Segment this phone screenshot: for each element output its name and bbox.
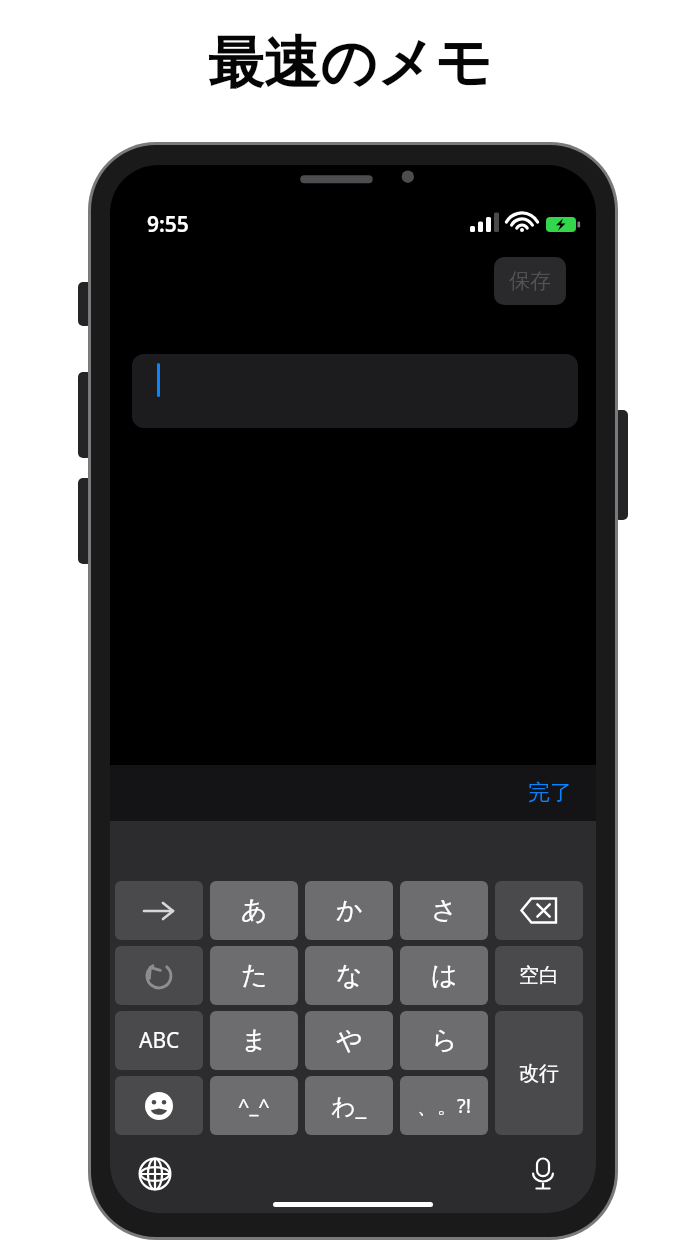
button[interactable]: Switch keyboard	[132, 1151, 178, 1197]
staticText: な	[336, 959, 363, 992]
staticText: 完了	[528, 779, 572, 807]
button[interactable]: は	[400, 946, 488, 1005]
staticText: や	[336, 1024, 363, 1057]
button[interactable]: Next candidate	[115, 881, 203, 940]
button[interactable]: ま	[210, 1011, 298, 1070]
button[interactable]: 改行	[495, 1011, 583, 1135]
button[interactable]	[132, 354, 578, 428]
staticText: 改行	[519, 1061, 559, 1086]
staticText: は	[431, 959, 458, 992]
button[interactable]: 完了	[510, 765, 590, 821]
button[interactable]: な	[305, 946, 393, 1005]
staticText: あ	[241, 894, 268, 927]
staticText: 、。?!	[417, 1092, 472, 1119]
button[interactable]: か	[305, 881, 393, 940]
button[interactable]: た	[210, 946, 298, 1005]
staticText: か	[336, 894, 363, 927]
staticText: た	[241, 959, 268, 992]
button[interactable]: 、。?!	[400, 1076, 488, 1135]
staticText: 最速のメモ	[208, 28, 492, 99]
button[interactable]: 保存	[494, 257, 566, 305]
staticText: ら	[431, 1024, 458, 1057]
button[interactable]: Dictation	[520, 1151, 566, 1197]
staticText: 9:55	[147, 210, 189, 239]
button[interactable]: わ_	[305, 1076, 393, 1135]
staticText: さ	[431, 894, 458, 927]
button[interactable]: さ	[400, 881, 488, 940]
staticText: 保存	[509, 268, 551, 294]
button[interactable]: ABC	[115, 1011, 203, 1070]
staticText: ま	[241, 1024, 268, 1057]
button[interactable]: ら	[400, 1011, 488, 1070]
staticText: ABC	[139, 1026, 180, 1055]
button[interactable]: Delete	[495, 881, 583, 940]
staticText: わ_	[331, 1089, 367, 1122]
button[interactable]: Emoji	[115, 1076, 203, 1135]
button[interactable]: ^_^	[210, 1076, 298, 1135]
button[interactable]: あ	[210, 881, 298, 940]
staticText: 空白	[519, 963, 559, 988]
button[interactable]: Undo	[115, 946, 203, 1005]
button[interactable]: 空白	[495, 946, 583, 1005]
staticText: ^_^	[238, 1092, 270, 1119]
button[interactable]: や	[305, 1011, 393, 1070]
